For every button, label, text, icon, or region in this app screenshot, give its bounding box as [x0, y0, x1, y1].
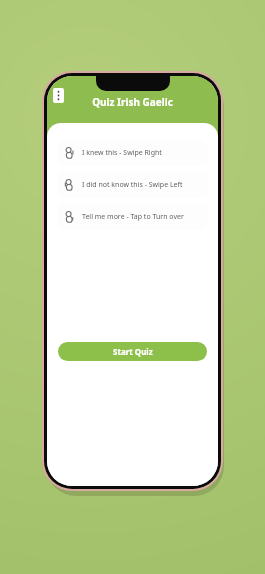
button[interactable]: I knew this - Swipe Right — [57, 140, 208, 166]
button[interactable]: Start Quiz — [58, 342, 207, 361]
button[interactable]: More options — [53, 88, 64, 103]
staticText: Quiz Irish Gaelic — [92, 95, 173, 109]
button[interactable]: I did not know this - Swipe Left — [57, 172, 208, 198]
staticText: I knew this - Swipe Right — [82, 148, 162, 158]
button[interactable]: Tell me more - Tap to Turn over — [57, 204, 208, 230]
staticText: Tell me more - Tap to Turn over — [82, 212, 184, 222]
staticText: Start Quiz — [113, 346, 153, 357]
staticText: I did not know this - Swipe Left — [82, 180, 183, 190]
